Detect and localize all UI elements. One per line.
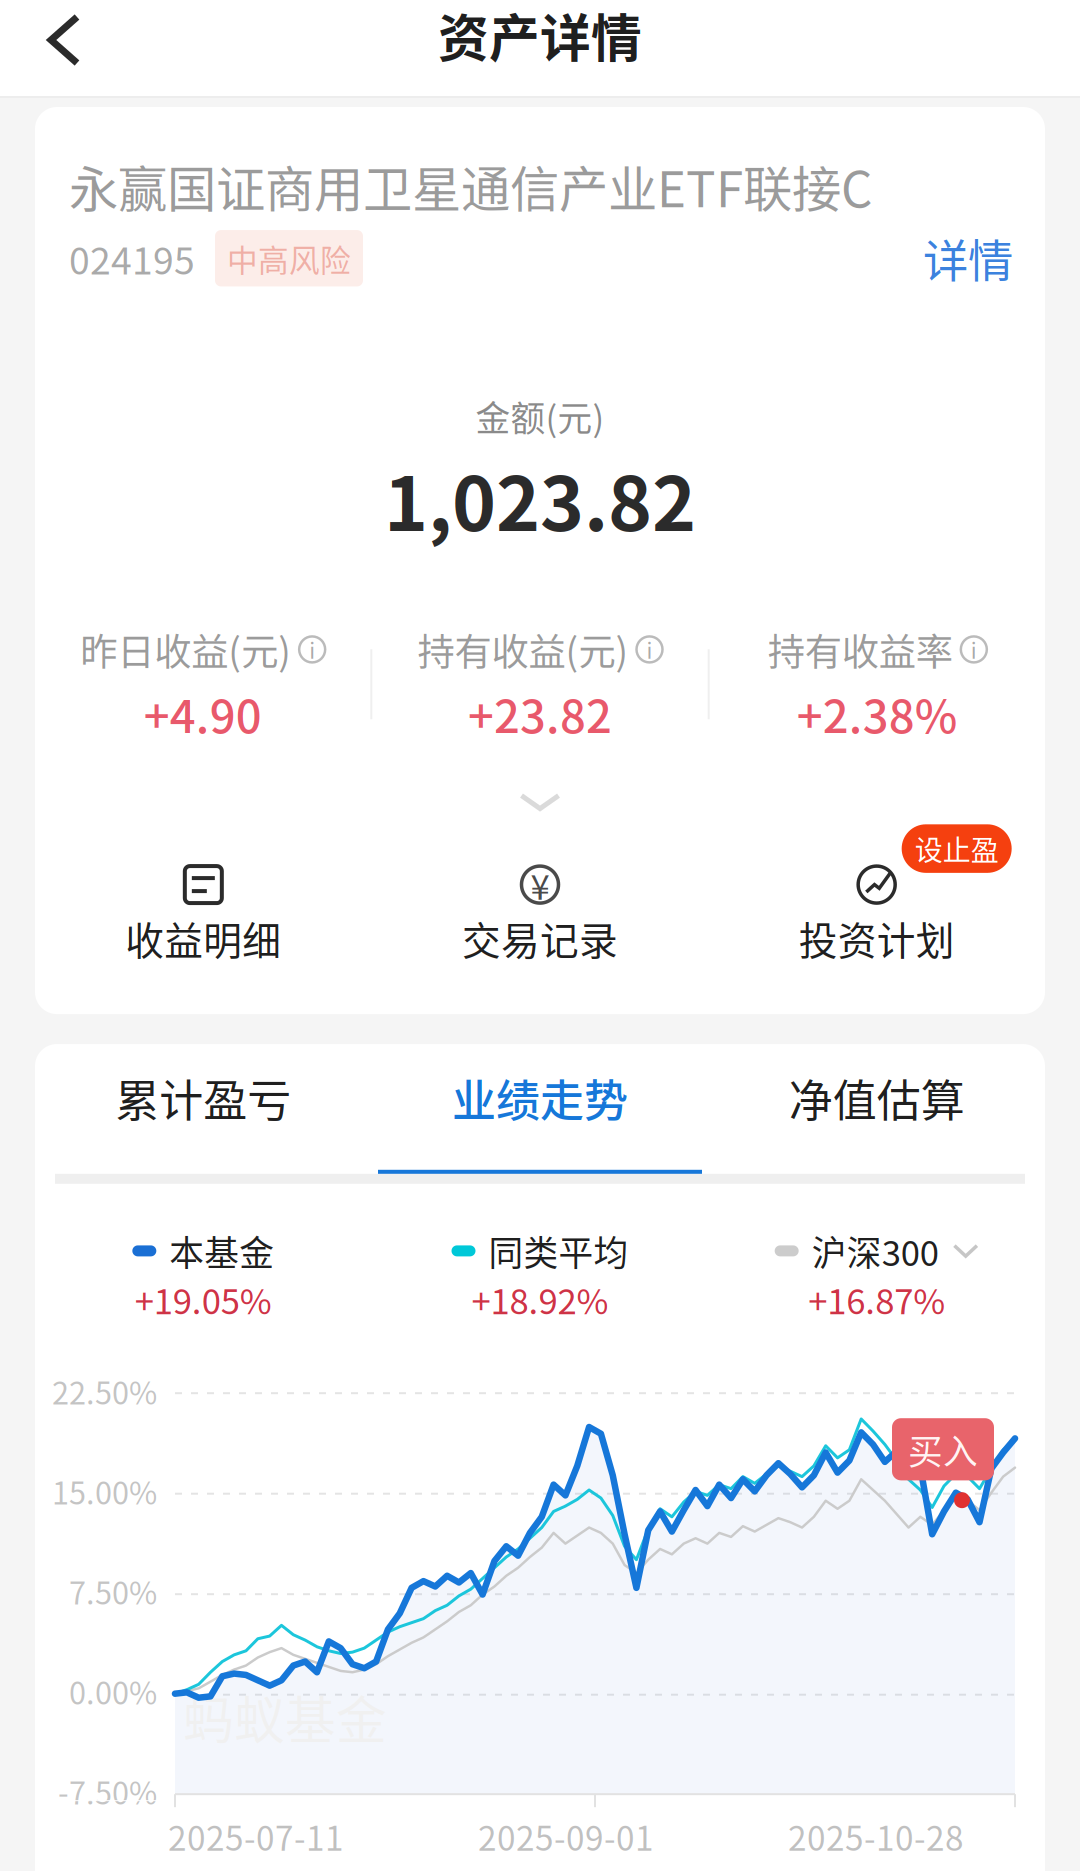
staticText: 金额(元) xyxy=(475,391,604,441)
staticText: 0.00% xyxy=(69,1669,157,1713)
staticText: 业绩走势 xyxy=(452,1066,628,1130)
staticText: 持有收益率 xyxy=(768,622,953,676)
button[interactable]: 业绩走势 xyxy=(372,1066,708,1184)
staticText: +23.82 xyxy=(468,680,612,746)
staticText: 中高风险 xyxy=(227,236,351,280)
staticText: +16.87% xyxy=(808,1274,945,1324)
staticText: 2025-09-01 xyxy=(478,1812,654,1860)
staticText: +4.90 xyxy=(144,680,262,746)
staticText: 22.50% xyxy=(52,1369,157,1413)
staticText: +2.38% xyxy=(797,680,958,746)
staticText: 1,023.82 xyxy=(384,444,696,552)
staticText: 蚂蚁基金 xyxy=(183,1680,387,1754)
button[interactable]: 净值估算 xyxy=(708,1066,1045,1184)
staticText: 7.50% xyxy=(69,1569,157,1613)
button[interactable]: 收益明细 xyxy=(35,866,372,966)
staticText: 15.00% xyxy=(52,1469,157,1513)
staticText: 昨日收益(元) xyxy=(80,622,291,676)
staticText: 详情 xyxy=(923,225,1013,291)
staticText: 净值估算 xyxy=(789,1066,965,1130)
staticText: 持有收益(元) xyxy=(417,622,628,676)
staticText: i xyxy=(971,634,977,665)
staticText: 投资计划 xyxy=(799,910,955,966)
staticText: -7.50% xyxy=(58,1769,157,1813)
staticText: 2025-07-11 xyxy=(168,1812,344,1860)
staticText: 沪深300 xyxy=(812,1226,939,1276)
staticText: 买入 xyxy=(908,1424,978,1474)
staticText: i xyxy=(646,634,652,665)
button[interactable]: 返回 xyxy=(0,0,128,108)
staticText: 本基金 xyxy=(169,1226,274,1276)
staticText: 同类平均 xyxy=(488,1226,628,1276)
staticText: ¥ xyxy=(530,859,549,910)
staticText: i xyxy=(309,634,315,665)
staticText: 2025-10-28 xyxy=(788,1812,964,1860)
staticText: 交易记录 xyxy=(462,910,618,966)
button[interactable]: ¥ xyxy=(372,866,708,966)
staticText: 资产详情 xyxy=(438,0,642,72)
staticText: 收益明细 xyxy=(125,910,281,966)
button[interactable]: 展开 xyxy=(519,783,561,821)
staticText: 设止盈 xyxy=(915,828,999,869)
staticText: 累计盈亏 xyxy=(115,1066,291,1130)
button[interactable]: 累计盈亏 xyxy=(35,1066,372,1184)
staticText: 024195 xyxy=(69,231,195,285)
button[interactable]: 详情 xyxy=(923,225,1013,291)
staticText: +19.05% xyxy=(135,1274,272,1324)
staticText: +18.92% xyxy=(471,1274,608,1324)
staticText: 永赢国证商用卫星通信产业ETF联接C xyxy=(69,150,872,221)
button[interactable]: 设止盈 xyxy=(708,866,1045,966)
